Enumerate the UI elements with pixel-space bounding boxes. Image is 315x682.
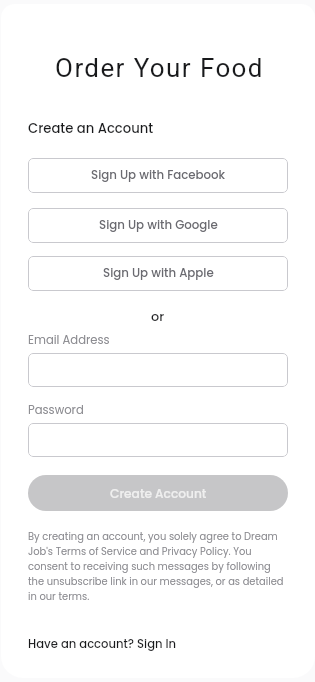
button[interactable]: Have an account? Sign In — [28, 636, 177, 652]
button[interactable]: Sign Up with Google — [28, 208, 288, 243]
staticText: Create an Account — [28, 119, 154, 137]
staticText: Email Address — [28, 332, 110, 348]
button[interactable] — [28, 423, 288, 457]
staticText: Password — [28, 402, 84, 418]
button[interactable]: Create Account — [28, 475, 288, 511]
staticText: Sign Up with Facebook — [91, 167, 226, 184]
staticText: Sign Up with Google — [99, 217, 218, 234]
button[interactable]: Sign Up with Facebook — [28, 158, 288, 193]
button[interactable] — [28, 353, 288, 387]
staticText: By creating an account, you solely agree… — [28, 530, 285, 603]
staticText: Sign Up with Apple — [103, 265, 214, 282]
button[interactable]: Sign Up with Apple — [28, 256, 288, 291]
staticText: or — [0, 308, 315, 326]
staticText: Order Your Food — [2, 53, 315, 83]
staticText: Create Account — [110, 485, 207, 502]
